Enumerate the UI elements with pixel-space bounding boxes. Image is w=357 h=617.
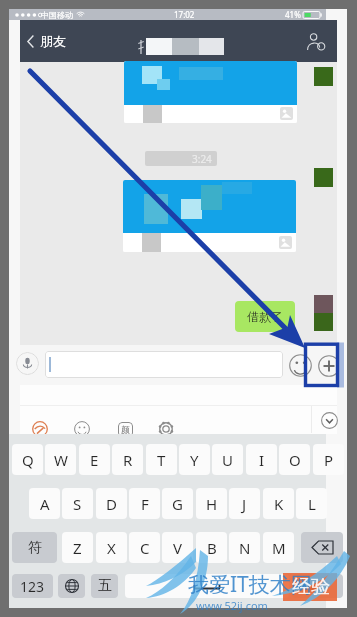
button[interactable]	[301, 532, 343, 563]
button[interactable]: F	[129, 488, 160, 519]
button[interactable]	[58, 574, 85, 598]
button[interactable]: Z	[62, 532, 93, 563]
button[interactable]: U	[212, 444, 243, 475]
staticText: www.52ij.com	[196, 598, 268, 613]
button[interactable]: Sogou input	[27, 416, 53, 442]
button[interactable]: T	[146, 444, 177, 475]
staticText: X	[107, 538, 116, 558]
staticText: R	[123, 450, 133, 470]
button[interactable]: H	[196, 488, 227, 519]
button[interactable]: R	[112, 444, 143, 475]
button[interactable]: Voice input	[112, 416, 138, 442]
button[interactable]: 五	[91, 574, 118, 598]
staticText: V	[173, 538, 183, 558]
staticText: D	[106, 494, 117, 514]
staticText: Y	[190, 450, 199, 470]
button[interactable]: 123	[12, 574, 53, 598]
staticText: 朋友	[40, 33, 66, 49]
staticText: A	[40, 494, 50, 514]
button[interactable]: Emoji	[287, 352, 314, 379]
button[interactable]: E	[79, 444, 110, 475]
staticText: Q	[22, 450, 34, 470]
staticText: 符	[28, 539, 42, 557]
button[interactable]: More functions	[315, 352, 342, 379]
button[interactable]: X	[96, 532, 127, 563]
button[interactable]: J	[229, 488, 260, 519]
staticText: E	[90, 450, 99, 470]
button[interactable]: C	[129, 532, 160, 563]
button[interactable]: Y	[179, 444, 210, 475]
staticText: W	[54, 450, 68, 470]
button[interactable]: W	[45, 444, 76, 475]
staticText: U	[222, 450, 233, 470]
staticText: C	[140, 538, 150, 558]
button[interactable]: 借款了	[235, 301, 295, 332]
button[interactable]: Settings	[153, 416, 179, 442]
button[interactable]: K	[263, 488, 294, 519]
button[interactable]: Q	[12, 444, 43, 475]
staticText: J	[242, 494, 247, 514]
staticText: 五	[98, 577, 112, 595]
staticText: I	[259, 450, 265, 470]
button[interactable]: I	[246, 444, 277, 475]
button[interactable]: D	[96, 488, 127, 519]
button[interactable]	[125, 574, 289, 598]
staticText: 颜	[121, 424, 130, 435]
staticText: 41%	[285, 9, 301, 20]
button[interactable]	[123, 180, 296, 252]
button[interactable]: 符	[12, 532, 57, 563]
button[interactable]	[124, 61, 297, 123]
staticText: O	[289, 450, 301, 470]
staticText: 123	[20, 577, 45, 596]
button[interactable]: Emoticon	[69, 416, 95, 442]
staticText: P	[324, 450, 334, 470]
button[interactable]: S	[62, 488, 93, 519]
staticText: K	[274, 494, 284, 514]
button[interactable]: A	[29, 488, 60, 519]
button[interactable]	[45, 351, 283, 378]
button[interactable]: Voice message	[16, 352, 39, 375]
button[interactable]: Hide keyboard	[313, 406, 345, 434]
staticText: 中国移动	[41, 10, 73, 20]
button[interactable]: Chat info	[303, 29, 329, 55]
button[interactable]: M	[263, 532, 294, 563]
staticText: Z	[73, 538, 82, 558]
button[interactable]: 朋友	[20, 20, 74, 62]
staticText: N	[239, 538, 251, 558]
button[interactable]: B	[196, 532, 227, 563]
staticText: 我爱IT技术网	[188, 570, 312, 599]
staticText: S	[73, 494, 82, 514]
staticText: B	[207, 538, 217, 558]
staticText: T	[157, 450, 166, 470]
button[interactable]	[292, 574, 343, 598]
staticText: 3:24	[192, 152, 212, 166]
button[interactable]: V	[162, 532, 193, 563]
staticText: 借款了	[247, 309, 283, 324]
staticText: H	[206, 494, 218, 514]
button[interactable]: O	[279, 444, 310, 475]
staticText: M	[272, 538, 286, 558]
staticText: F	[141, 494, 149, 514]
staticText: 经验	[292, 575, 330, 599]
button[interactable]: L	[296, 488, 327, 519]
staticText: G	[172, 494, 183, 514]
staticText: 17:02	[174, 9, 195, 20]
button[interactable]: G	[162, 488, 193, 519]
button[interactable]: P	[313, 444, 344, 475]
button[interactable]: N	[229, 532, 260, 563]
staticText: L	[308, 494, 316, 514]
